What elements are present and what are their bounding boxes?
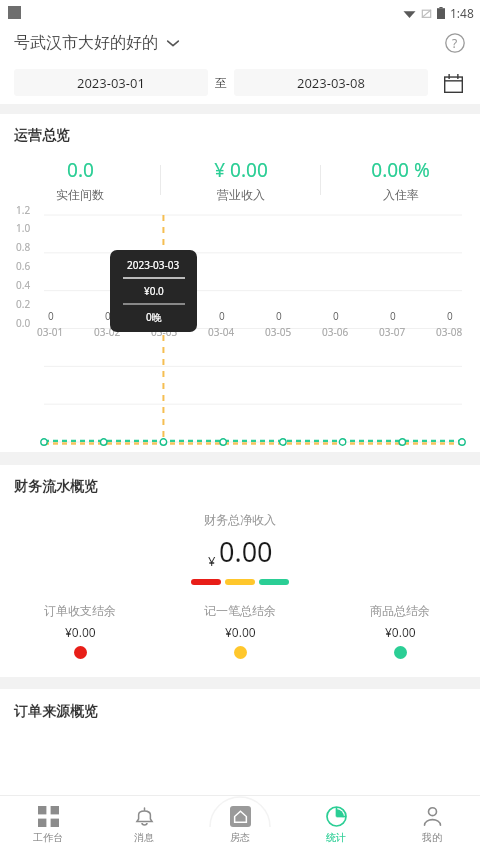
staticText: 2023-03-03 (127, 258, 180, 272)
staticText: 记一笔总结余 (204, 603, 276, 618)
staticText: 统计 (326, 831, 346, 844)
staticText: 订单收支结余 (44, 603, 116, 618)
staticText: 03-03 (151, 325, 178, 339)
staticText: 0.4 (16, 278, 31, 292)
staticText: 营业收入 (217, 187, 265, 202)
staticText: ¥0.00 (65, 624, 96, 640)
staticText: ¥0.0 (144, 284, 164, 298)
staticText: 工作台 (33, 831, 63, 844)
staticText: ¥ 0.00 (214, 157, 268, 183)
staticText: 0.8 (16, 240, 31, 254)
button[interactable]: 统计 (288, 795, 384, 854)
staticText: 03-01 (37, 325, 64, 339)
button[interactable]: ¥ 0.00 (161, 157, 320, 202)
staticText: ¥ (208, 552, 216, 570)
staticText: 0 (48, 309, 54, 323)
staticText: 商品总结余 (370, 603, 430, 618)
staticText: 财务总净收入 (204, 512, 276, 527)
button[interactable]: 我的 (384, 795, 480, 854)
staticText: 2023-03-08 (297, 74, 365, 92)
staticText: 1:48 (450, 5, 474, 21)
staticText: 订单来源概览 (14, 703, 98, 721)
staticText: 0 (219, 309, 225, 323)
staticText: 03-04 (208, 325, 235, 339)
staticText: 0.0 (67, 157, 94, 183)
staticText: 0.6 (16, 259, 31, 273)
staticText: ¥0.00 (225, 624, 256, 640)
button[interactable]: 0.0 (0, 157, 160, 202)
staticText: 0.00 (219, 533, 273, 570)
staticText: 号武汉市大好的好的 (14, 33, 158, 53)
staticText: 运营总览 (14, 127, 70, 145)
button[interactable]: Pick date (440, 70, 466, 96)
button[interactable]: 记一笔总结余 (160, 603, 320, 659)
staticText: 0 (276, 309, 282, 323)
staticText: ¥0.00 (385, 624, 416, 640)
staticText: 财务流水概览 (14, 478, 98, 496)
button[interactable]: Help (442, 30, 468, 56)
button[interactable]: 商品总结余 (320, 603, 480, 659)
button[interactable]: 房态 (192, 795, 288, 854)
staticText: 0.00 % (371, 157, 430, 183)
staticText: 03-05 (265, 325, 292, 339)
button[interactable]: 消息 (96, 795, 192, 854)
staticText: 实住间数 (56, 187, 104, 202)
staticText: 03-07 (379, 325, 406, 339)
staticText: 0 (447, 309, 453, 323)
staticText: 0 (333, 309, 339, 323)
staticText: 03-08 (436, 325, 463, 339)
button[interactable]: 订单收支结余 (0, 603, 160, 659)
staticText: ? (452, 35, 458, 51)
staticText: 1.0 (16, 221, 31, 235)
staticText: 房态 (230, 831, 250, 844)
staticText: 消息 (134, 831, 154, 844)
staticText: 0.2 (16, 297, 31, 311)
staticText: 03-06 (322, 325, 349, 339)
staticText: 0.0 (16, 316, 31, 330)
staticText: 0 (105, 309, 111, 323)
staticText: 1.2 (16, 203, 31, 217)
button[interactable]: 2023-03-08 (234, 69, 428, 96)
staticText: 至 (215, 75, 227, 90)
button[interactable]: 0.00 % (321, 157, 480, 202)
staticText: 入住率 (383, 187, 419, 202)
staticText: 03-02 (94, 325, 121, 339)
staticText: 0 (390, 309, 396, 323)
staticText: 2023-03-01 (77, 74, 145, 92)
staticText: 我的 (422, 831, 442, 844)
button[interactable]: 2023-03-01 (14, 69, 208, 96)
button[interactable]: 工作台 (0, 795, 96, 854)
button[interactable]: 号武汉市大好的好的 (12, 29, 182, 57)
staticText: 0晚 (146, 310, 162, 324)
